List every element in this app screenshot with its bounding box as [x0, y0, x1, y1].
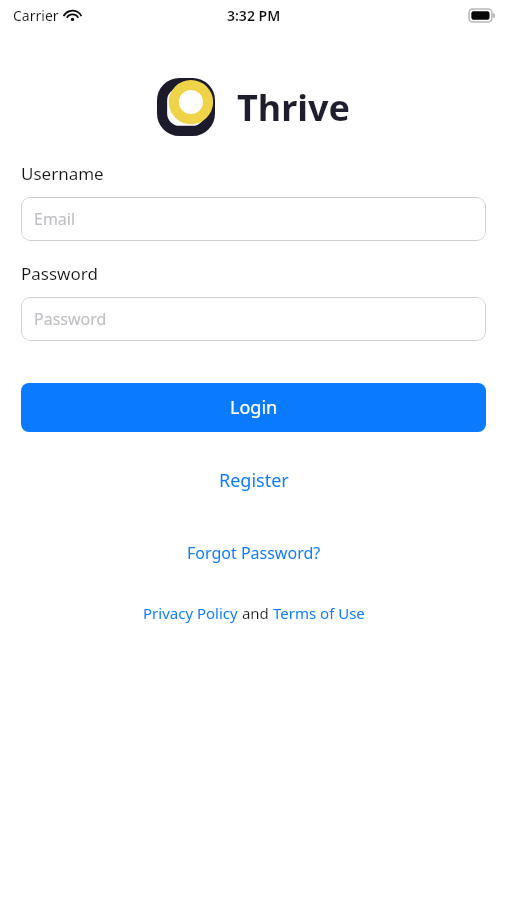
staticText: Email: [34, 208, 76, 230]
staticText: Username: [21, 162, 104, 185]
button[interactable]: Register: [209, 465, 299, 496]
button[interactable]: Password field: [21, 297, 486, 341]
staticText: Terms of Use: [273, 603, 365, 623]
other: Thrive logo: [157, 78, 215, 136]
button[interactable]: Username field: [21, 197, 486, 241]
staticText: and: [238, 603, 273, 623]
staticText: Register: [219, 468, 289, 493]
staticText: Password: [34, 308, 107, 330]
button[interactable]: Forgot Password?: [177, 539, 331, 567]
staticText: Forgot Password?: [187, 542, 321, 564]
button[interactable]: Terms of Use: [273, 600, 365, 626]
staticText: Login: [230, 395, 278, 420]
staticText: Carrier: [13, 6, 59, 25]
staticText: 3:32 PM: [227, 6, 281, 25]
button[interactable]: Privacy Policy: [143, 600, 238, 626]
staticText: Thrive: [237, 83, 351, 132]
staticText: Privacy Policy: [143, 603, 238, 623]
staticText: Password: [21, 262, 98, 285]
button[interactable]: Login: [21, 383, 486, 432]
